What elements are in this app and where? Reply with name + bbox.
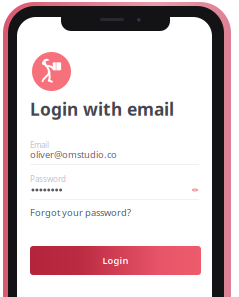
staticText: Login with email: [30, 97, 174, 120]
staticText: Password: [30, 174, 66, 184]
staticText: Forgot your password?: [30, 206, 131, 219]
button[interactable]: Login: [30, 246, 201, 275]
button[interactable]: Show password: [188, 184, 202, 196]
staticText: oliver@omstudio.co: [30, 148, 117, 161]
staticText: Login: [102, 254, 128, 267]
button[interactable]: Forgot your password?: [30, 206, 145, 219]
staticText: Email: [30, 140, 49, 150]
